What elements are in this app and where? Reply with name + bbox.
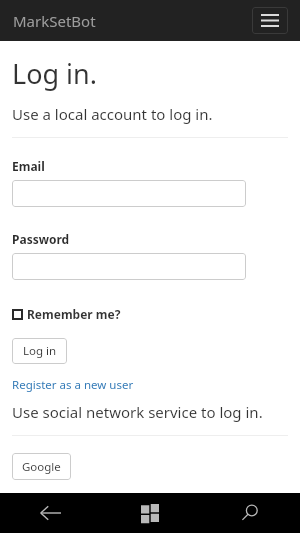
staticText: Log in <box>23 343 57 359</box>
button[interactable]: Remember me? <box>12 306 121 322</box>
button[interactable]: Toggle navigation <box>252 7 288 34</box>
button[interactable] <box>12 253 246 280</box>
button[interactable]: Register as a new user <box>12 377 134 393</box>
staticText: Password <box>12 231 70 247</box>
staticText: Use a local account to log in. <box>12 104 213 124</box>
button[interactable]: MarkSetBot <box>13 11 96 31</box>
button[interactable]: Start <box>100 493 200 533</box>
staticText: Remember me? <box>27 306 121 322</box>
button[interactable]: Back <box>0 493 100 533</box>
staticText: Use social network service to log in. <box>12 402 263 422</box>
button[interactable]: Search <box>200 493 300 533</box>
staticText: Log in. <box>12 55 97 92</box>
button[interactable]: Google <box>12 453 71 480</box>
button[interactable] <box>12 180 246 207</box>
staticText: Email <box>12 158 45 174</box>
staticText: Google <box>22 459 61 475</box>
button[interactable]: Log in <box>12 338 67 364</box>
